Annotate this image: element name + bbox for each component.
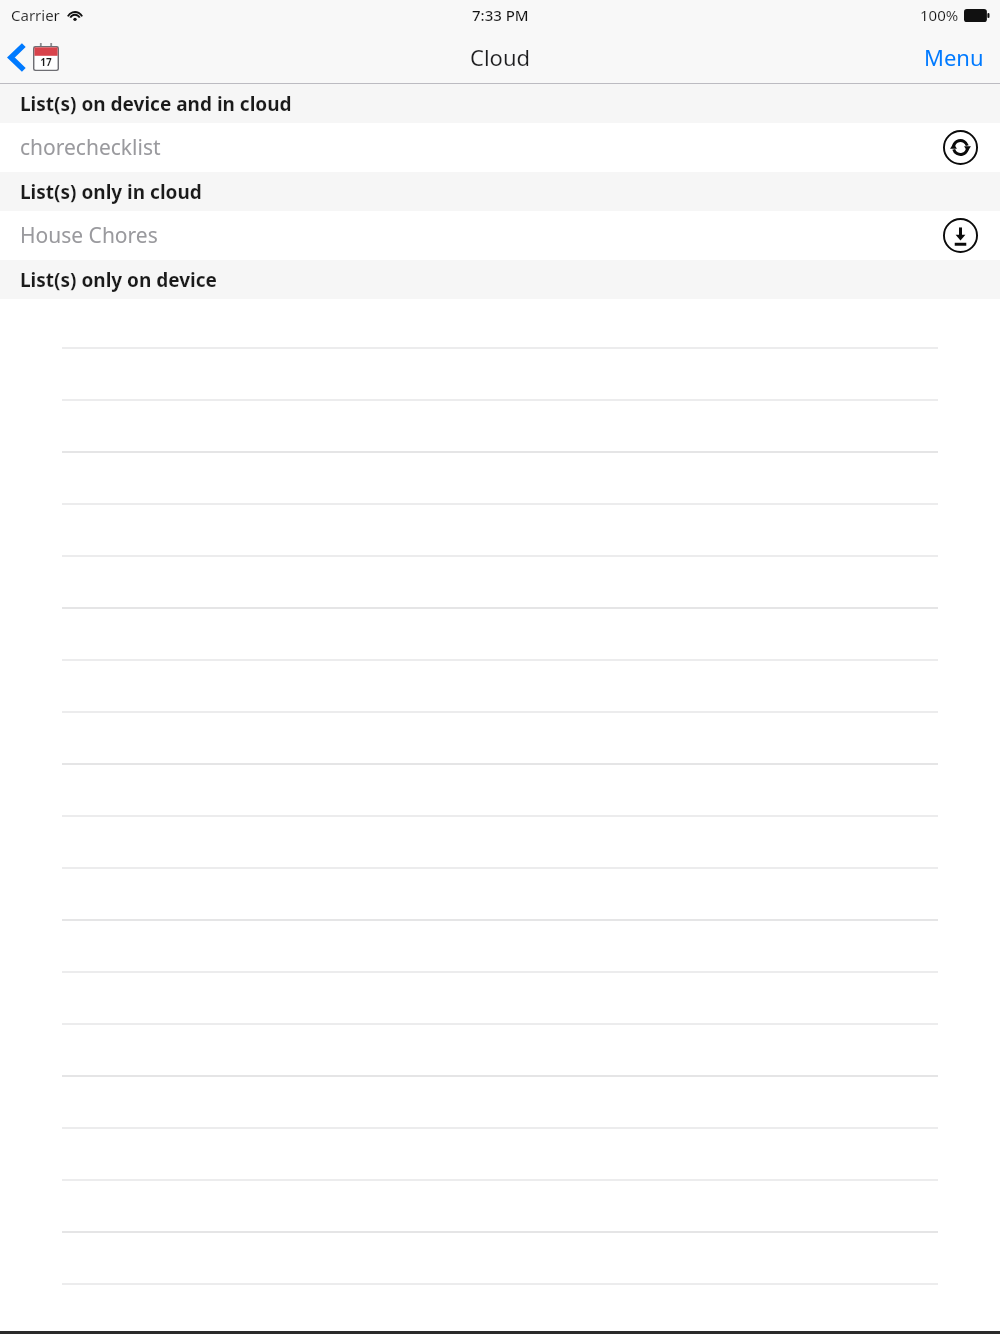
staticText: List(s) only on device [20,267,217,293]
staticText: 17 [40,55,52,69]
button[interactable]: Menu [908,34,1000,80]
staticText: House Chores [20,221,158,250]
staticText: List(s) only in cloud [20,179,202,205]
staticText: 100% [920,5,959,25]
button[interactable]: chorechecklist [0,123,1000,172]
staticText: 7:33 PM [472,5,529,25]
button[interactable]: Back to calendar [0,37,71,77]
staticText: List(s) on device and in cloud [20,91,292,117]
button[interactable]: Sync list [942,129,979,166]
button[interactable]: House Chores [0,211,1000,260]
staticText: Cloud [470,42,531,72]
staticText: chorechecklist [20,133,161,162]
button[interactable]: Download list [942,217,979,254]
staticText: Carrier [11,5,60,25]
staticText: Menu [924,42,984,72]
